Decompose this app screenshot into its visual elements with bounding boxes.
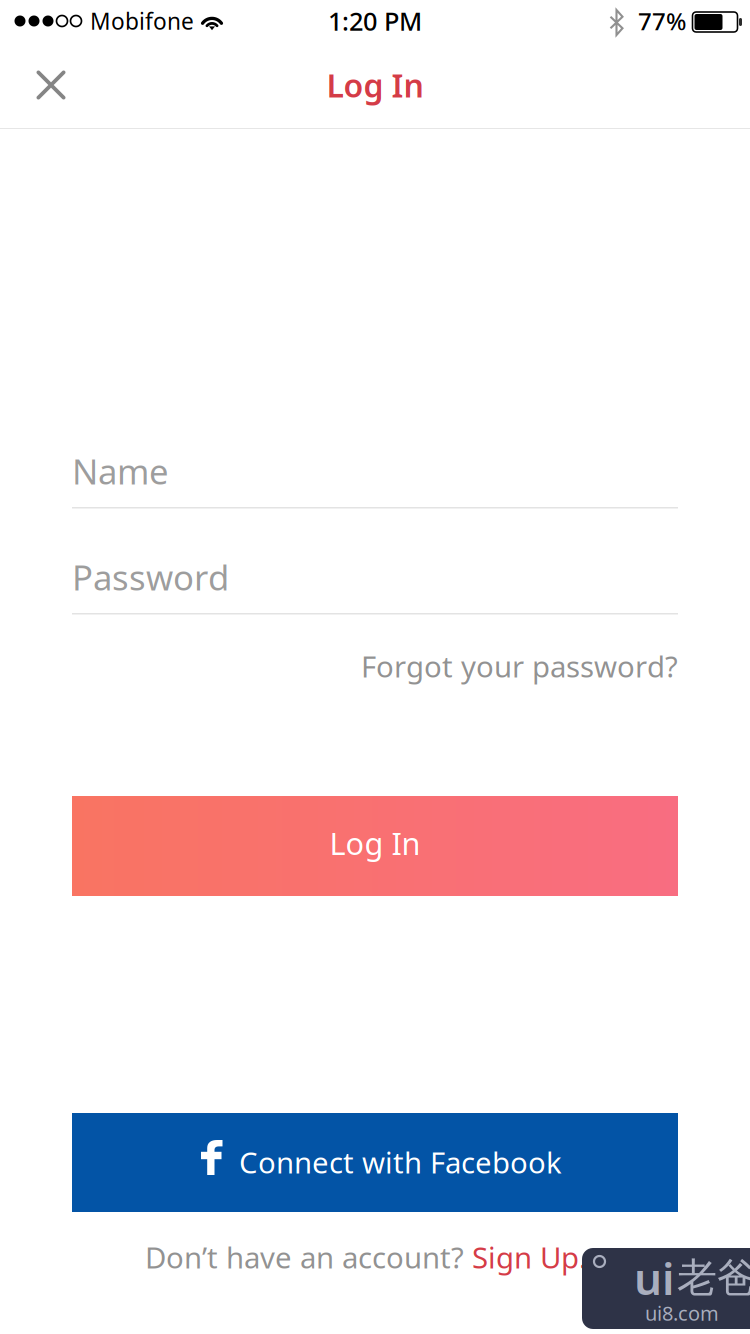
- staticText: Connect with Facebook: [239, 1142, 562, 1181]
- staticText: 77%: [638, 5, 686, 37]
- staticText: Forgot your password?: [361, 646, 678, 685]
- staticText: ui: [634, 1249, 674, 1307]
- button[interactable]: Close: [6, 54, 96, 116]
- staticText: Log In: [326, 64, 423, 106]
- staticText: Password: [72, 554, 229, 600]
- staticText: ui8.com: [645, 1300, 719, 1326]
- button[interactable]: Connect with Facebook: [72, 1113, 678, 1212]
- staticText: 老爸: [677, 1253, 750, 1302]
- button[interactable]: Forgot your password?: [72, 624, 678, 708]
- staticText: 1:20 PM: [328, 4, 422, 38]
- button[interactable]: Sign Up.: [464, 1237, 587, 1276]
- staticText: Sign Up.: [464, 1237, 587, 1276]
- staticText: Mobifone: [90, 6, 194, 36]
- staticText: Don’t have an account?: [145, 1237, 464, 1276]
- button[interactable]: Log In: [72, 796, 678, 896]
- staticText: Log In: [329, 823, 420, 863]
- staticText: Name: [72, 448, 169, 494]
